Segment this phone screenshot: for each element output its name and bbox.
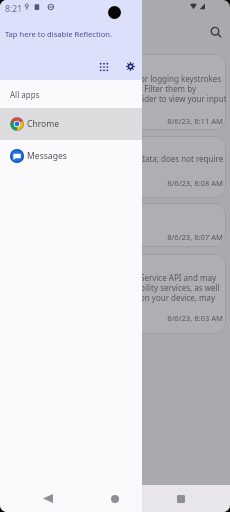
staticText: All apps — [10, 89, 40, 100]
staticText: on your device, may — [140, 292, 230, 303]
staticText: Messages — [27, 150, 67, 162]
button[interactable] — [120, 54, 226, 130]
staticText: 8:21 — [5, 3, 23, 15]
staticText: Tap here to disable Reflection. — [5, 29, 112, 39]
staticText: data; does not require — [140, 153, 230, 164]
staticText: 8/6/23, 8:07 AM — [144, 232, 223, 242]
button[interactable] — [120, 136, 226, 198]
button[interactable]: Chrome — [0, 108, 142, 140]
button[interactable]: Home — [95, 485, 135, 512]
button[interactable]: Messages — [0, 140, 142, 172]
button[interactable] — [120, 254, 226, 334]
staticText: Chrome — [27, 118, 60, 130]
staticText: 8/6/23, 8:08 AM — [144, 178, 223, 188]
button[interactable]: Back — [28, 485, 68, 512]
staticText: Service API and may — [140, 272, 230, 283]
staticText: Filter them by — [140, 83, 230, 94]
staticText: or logging keystrokes — [140, 73, 230, 84]
staticText: 8/6/23, 8:11 AM — [144, 116, 223, 126]
button[interactable]: Recent apps — [161, 485, 201, 512]
button[interactable]: Search — [207, 23, 225, 41]
button[interactable] — [120, 203, 226, 247]
button[interactable]: All apps — [94, 57, 114, 77]
staticText: 8/6/23, 8:03 AM — [144, 313, 223, 323]
staticText: lider to view your input — [140, 93, 230, 104]
button[interactable]: Settings — [120, 56, 140, 76]
staticText: bility services, as well — [140, 282, 230, 293]
